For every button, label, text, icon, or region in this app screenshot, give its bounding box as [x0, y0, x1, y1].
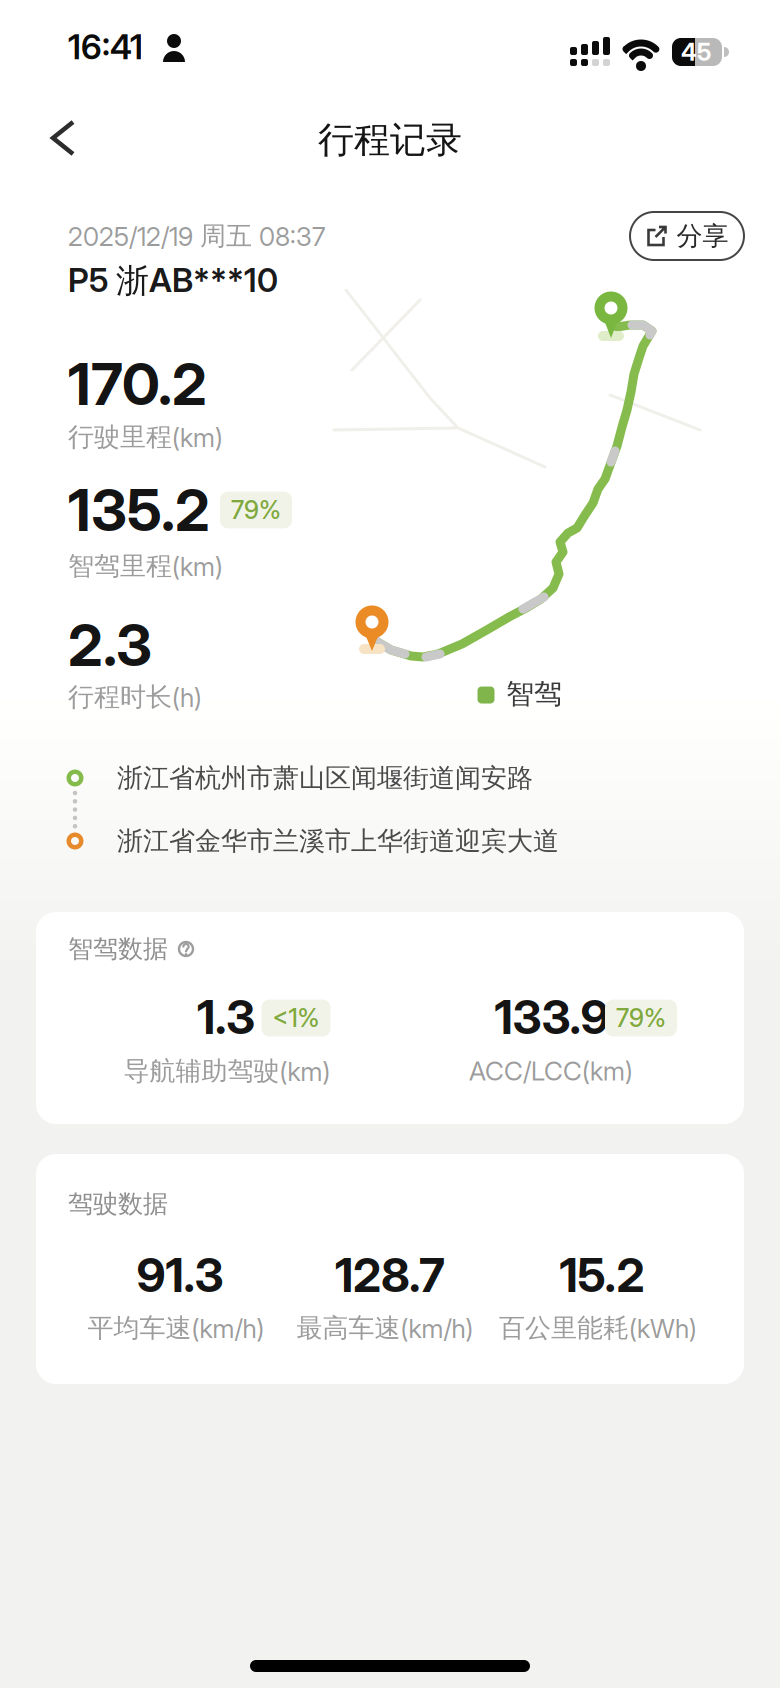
staticText: ACC/LCC(km)	[469, 1056, 633, 1086]
staticText: 行驶里程(km)	[68, 421, 223, 452]
staticText: 行程时长(h)	[68, 681, 202, 712]
staticText: 128.7	[335, 1248, 445, 1302]
staticText: 最高车速(km/h)	[296, 1312, 473, 1343]
staticText: 百公里能耗(kWh)	[499, 1312, 697, 1343]
button[interactable]	[39, 114, 87, 162]
staticText: 79%	[231, 496, 281, 524]
staticText: 16:41	[68, 27, 143, 67]
staticText: 135.2	[68, 477, 210, 543]
staticText: 2.3	[68, 612, 152, 678]
staticText: 智驾数据	[68, 934, 168, 964]
staticText: 1.3	[197, 990, 255, 1044]
button[interactable]	[172, 935, 200, 963]
staticText: 170.2	[68, 351, 207, 417]
staticText: 浙江省金华市兰溪市上华街道迎宾大道	[117, 825, 559, 856]
staticText: 智驾	[506, 677, 562, 711]
staticText: 驾驶数据	[68, 1189, 168, 1219]
staticText: 行程记录	[318, 118, 462, 162]
staticText: 平均车速(km/h)	[87, 1312, 264, 1343]
staticText: 智驾里程(km)	[68, 550, 223, 581]
staticText: 分享	[676, 220, 728, 251]
staticText: 133.9	[494, 990, 609, 1044]
staticText: 15.2	[559, 1248, 644, 1302]
staticText: 91.3	[136, 1248, 223, 1302]
button[interactable]: 分享	[630, 212, 744, 260]
staticText: 2025/12/19 周五 08:37	[68, 220, 325, 251]
staticText: 浙江省杭州市萧山区闻堰街道闻安路	[117, 762, 533, 793]
staticText: 导航辅助驾驶(km)	[123, 1055, 330, 1086]
staticText: 45	[681, 38, 711, 66]
staticText: <1%	[272, 1004, 319, 1032]
staticText: 79%	[616, 1004, 666, 1032]
staticText: P5 浙AB***10	[68, 261, 278, 301]
